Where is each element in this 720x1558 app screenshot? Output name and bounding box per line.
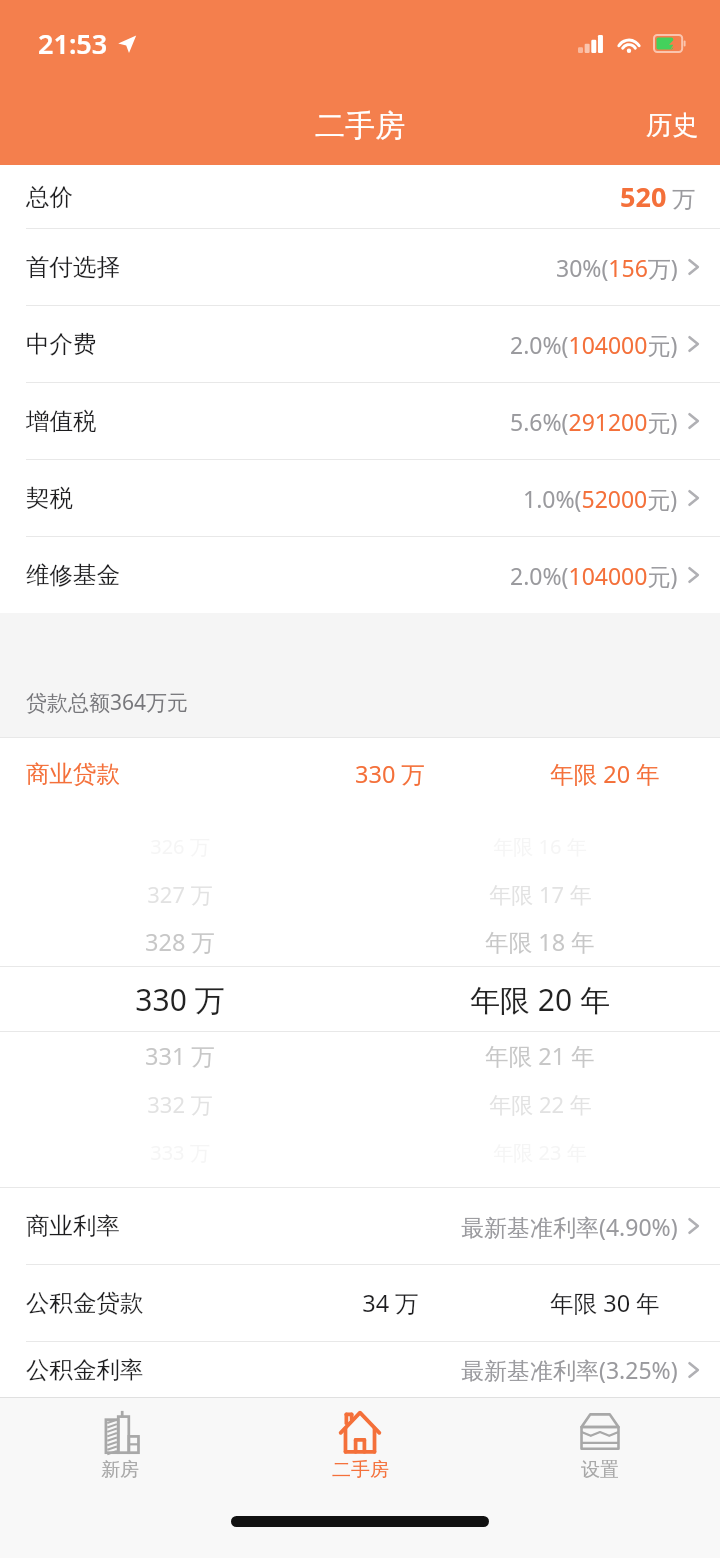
staticText: 30%(156万) <box>556 252 678 283</box>
staticText: 年限 22 年 <box>489 1089 592 1119</box>
staticText: 21:53 <box>38 25 108 62</box>
staticText: 331 万 <box>145 1040 215 1072</box>
staticText: 1.0%(52000元) <box>523 483 678 514</box>
staticText: 增值税 <box>26 406 97 436</box>
button[interactable]: 首付选择 <box>0 229 720 305</box>
button[interactable]: 新房 <box>0 1398 240 1500</box>
staticText: 2.0%(104000元) <box>510 560 678 591</box>
staticText: 年限 23 年 <box>493 1139 587 1166</box>
button[interactable]: 二手房 <box>240 1398 480 1500</box>
staticText: 最新基准利率(3.25%) <box>461 1354 678 1385</box>
staticText: 年限 20 年 <box>470 979 610 1020</box>
staticText: 年限 30 年 <box>550 1287 660 1319</box>
staticText: 332 万 <box>147 1089 213 1119</box>
staticText: 2.0%(104000元) <box>510 329 678 360</box>
staticText: 年限 21 年 <box>485 1040 595 1072</box>
button[interactable]: 公积金利率 <box>0 1342 720 1397</box>
button[interactable]: 历史 <box>624 99 720 152</box>
staticText: 二手房 <box>315 107 405 145</box>
staticText: 年限 16 年 <box>493 833 587 860</box>
button[interactable]: 公积金贷款 <box>0 1265 720 1341</box>
staticText: 330 万 <box>135 979 225 1020</box>
staticText: 326 万 <box>150 833 210 860</box>
button[interactable]: 契税 <box>0 460 720 536</box>
staticText: 贷款总额364万元 <box>26 688 189 717</box>
staticText: 设置 <box>581 1458 619 1482</box>
button[interactable]: 商业利率 <box>0 1188 720 1264</box>
staticText: 最新基准利率(4.90%) <box>461 1211 678 1242</box>
button[interactable]: 设置 <box>480 1398 720 1500</box>
button[interactable]: 中介费 <box>0 306 720 382</box>
staticText: 年限 20 年 <box>550 758 660 790</box>
staticText: 34 万 <box>362 1287 419 1319</box>
staticText: 公积金利率 <box>26 1355 144 1385</box>
button[interactable]: 增值税 <box>0 383 720 459</box>
staticText: 520 万 <box>620 178 696 215</box>
staticText: 二手房 <box>332 1458 389 1482</box>
button[interactable]: 总价 <box>0 165 720 228</box>
staticText: 总价 <box>26 182 73 212</box>
staticText: 历史 <box>646 109 698 142</box>
staticText: 333 万 <box>150 1139 210 1166</box>
staticText: 328 万 <box>145 926 215 958</box>
button[interactable]: 商业贷款 <box>0 738 720 810</box>
staticText: 商业贷款 <box>26 759 120 789</box>
staticText: 首付选择 <box>26 252 120 282</box>
staticText: 5.6%(291200元) <box>510 406 678 437</box>
staticText: 年限 17 年 <box>489 879 592 909</box>
staticText: 327 万 <box>147 879 213 909</box>
staticText: 商业利率 <box>26 1211 120 1241</box>
staticText: 中介费 <box>26 329 97 359</box>
staticText: 公积金贷款 <box>26 1288 144 1318</box>
button[interactable]: 维修基金 <box>0 537 720 613</box>
staticText: 年限 18 年 <box>485 926 595 958</box>
staticText: 新房 <box>101 1458 139 1482</box>
staticText: 维修基金 <box>26 560 120 590</box>
staticText: 330 万 <box>355 758 425 790</box>
staticText: 契税 <box>26 483 73 513</box>
